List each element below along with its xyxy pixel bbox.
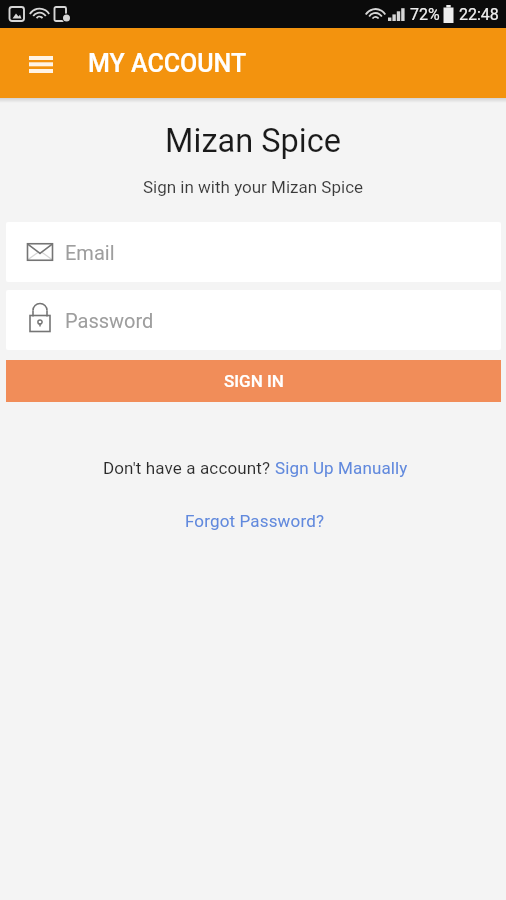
staticText: Forgot Password?	[185, 511, 325, 531]
staticText: Password	[65, 309, 154, 332]
button[interactable]: Password	[6, 290, 501, 350]
button[interactable]: Open navigation menu	[22, 46, 59, 83]
staticText: Sign in with your Mizan Spice	[0, 177, 506, 197]
staticText: SIGN IN	[224, 371, 284, 391]
staticText: 72%	[410, 5, 440, 24]
button[interactable]: SIGN IN	[6, 360, 501, 402]
staticText: 22:48	[459, 5, 499, 24]
button[interactable]: Email	[6, 222, 501, 282]
staticText: Mizan Spice	[0, 122, 506, 160]
button[interactable]: Sign Up Manually	[275, 458, 408, 478]
staticText: Don't have a account?	[103, 458, 275, 478]
staticText: Email	[65, 241, 115, 264]
button[interactable]: Forgot Password?	[185, 511, 325, 531]
staticText: MY ACCOUNT	[88, 49, 247, 78]
staticText: Sign Up Manually	[275, 458, 408, 478]
